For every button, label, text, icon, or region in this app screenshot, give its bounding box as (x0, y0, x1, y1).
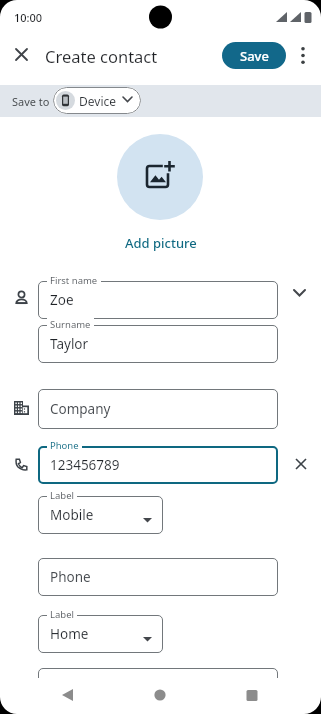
staticText: Zoe (50, 291, 74, 309)
staticText: Phone (50, 568, 91, 586)
staticText: Create contact (45, 45, 158, 67)
staticText: Home (50, 625, 89, 643)
staticText: Phone (50, 439, 79, 452)
button[interactable]: Company (38, 389, 278, 429)
staticText: First name (50, 274, 98, 287)
button[interactable] (13, 46, 30, 63)
button[interactable] (117, 134, 203, 220)
button[interactable]: 123456789 (38, 446, 278, 484)
staticText: Label (50, 489, 74, 502)
staticText: Company (50, 400, 111, 418)
button[interactable] (56, 684, 80, 708)
button[interactable]: Zoe (38, 281, 278, 319)
button[interactable] (295, 47, 311, 64)
button[interactable]: Device (53, 87, 141, 114)
button[interactable] (240, 684, 264, 708)
button[interactable]: Add picture (125, 234, 197, 252)
button[interactable]: Save (222, 42, 286, 69)
staticText: 10:00 (14, 10, 43, 25)
staticText: Label (50, 608, 74, 621)
button[interactable]: Home (38, 615, 163, 653)
staticText: Save (240, 47, 269, 65)
staticText: Save to (12, 94, 50, 109)
staticText: Mobile (50, 506, 94, 524)
button[interactable] (148, 684, 172, 708)
button[interactable] (38, 668, 278, 706)
button[interactable]: Taylor (38, 325, 278, 363)
staticText: Taylor (50, 335, 89, 353)
button[interactable]: Mobile (38, 496, 163, 534)
staticText: Device (79, 93, 117, 109)
staticText: 123456789 (50, 456, 120, 474)
staticText: Surname (50, 318, 91, 331)
button[interactable]: Phone (38, 558, 278, 596)
